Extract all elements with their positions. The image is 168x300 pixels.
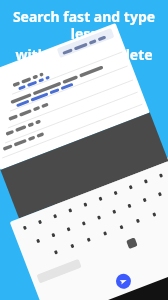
staticText: with auto-complete (15, 45, 153, 64)
button[interactable]: Keyboard app preview (0, 0, 168, 300)
staticText: Search fast and type less (6, 7, 162, 43)
